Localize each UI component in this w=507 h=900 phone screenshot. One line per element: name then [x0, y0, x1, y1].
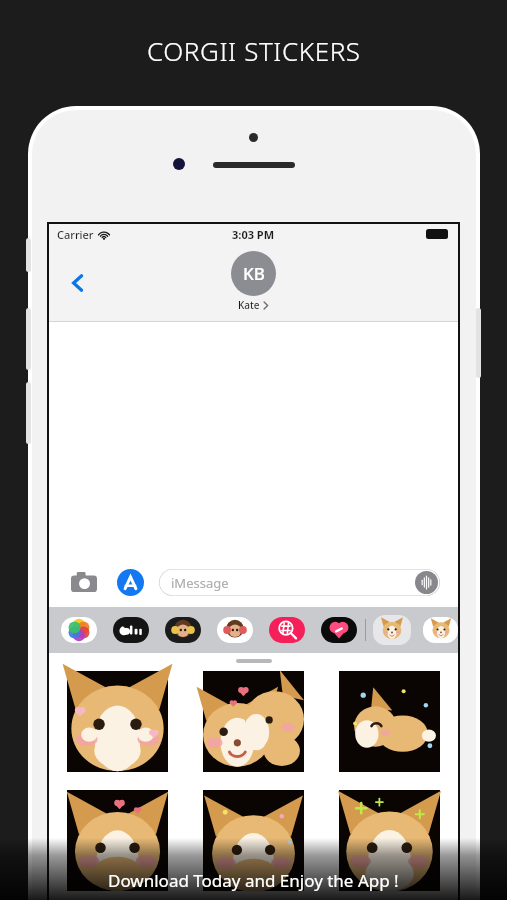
- button[interactable]: More stickers: [423, 617, 458, 643]
- button[interactable]: App: [113, 617, 149, 643]
- button[interactable]: Corgi sticker: [67, 671, 168, 772]
- button[interactable]: Back: [57, 262, 99, 304]
- staticText: Download Today and Enjoy the App !: [108, 869, 399, 892]
- button[interactable]: Corgi sticker: [339, 671, 440, 772]
- button[interactable]: Corgi sticker: [67, 790, 168, 891]
- button[interactable]: App: [269, 617, 305, 643]
- staticText: iMessage: [171, 574, 229, 592]
- button[interactable]: Camera: [67, 565, 101, 599]
- button[interactable]: Corgi sticker: [203, 790, 304, 891]
- staticText: Carrier: [57, 227, 94, 242]
- button[interactable]: App Store: [115, 567, 145, 597]
- button[interactable]: App: [61, 617, 97, 643]
- button[interactable]: App: [321, 617, 357, 643]
- button[interactable]: Corgi sticker: [203, 671, 304, 772]
- button[interactable]: iMessage: [159, 569, 440, 596]
- button[interactable]: App: [217, 617, 253, 643]
- button[interactable]: Record audio: [415, 571, 438, 594]
- staticText: KB: [243, 262, 265, 285]
- button[interactable]: App: [165, 617, 201, 643]
- staticText: 3:03 PM: [232, 227, 275, 242]
- button[interactable]: KB: [231, 251, 276, 312]
- staticText: CORGII STICKERS: [147, 33, 361, 68]
- button[interactable]: Corgii Stickers: [373, 615, 411, 645]
- button[interactable]: Corgi sticker: [339, 790, 440, 891]
- staticText: Kate: [238, 298, 260, 312]
